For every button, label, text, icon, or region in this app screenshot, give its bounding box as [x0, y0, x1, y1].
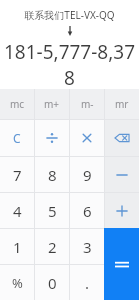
staticText: 6: [83, 201, 92, 221]
button[interactable]: mr: [105, 89, 139, 119]
button[interactable]: %: [0, 265, 34, 300]
button[interactable]: Multiply: [70, 120, 104, 156]
button[interactable]: C: [0, 120, 34, 156]
staticText: 4: [13, 201, 22, 221]
staticText: mr: [115, 97, 129, 111]
staticText: .: [85, 273, 90, 293]
button[interactable]: Minus: [105, 157, 139, 192]
staticText: 联系我们TEL-VX-QQ: [24, 8, 115, 22]
button[interactable]: 6: [70, 193, 104, 228]
staticText: %: [12, 274, 23, 292]
button[interactable]: 2: [35, 229, 69, 264]
staticText: 7: [13, 165, 22, 185]
button[interactable]: 7: [0, 157, 34, 192]
button[interactable]: Backspace: [105, 120, 139, 156]
button[interactable]: 3: [70, 229, 104, 264]
staticText: 0: [48, 273, 57, 293]
button[interactable]: m+: [35, 89, 69, 119]
staticText: 3: [83, 237, 92, 257]
staticText: 5: [48, 201, 57, 221]
staticText: mc: [10, 97, 25, 111]
button[interactable]: 8: [35, 157, 69, 192]
button[interactable]: 1: [0, 229, 34, 264]
staticText: 8: [48, 165, 57, 185]
staticText: m-: [81, 97, 94, 111]
staticText: 2: [48, 237, 57, 257]
button[interactable]: m-: [70, 89, 104, 119]
button[interactable]: 5: [35, 193, 69, 228]
button[interactable]: Plus: [105, 193, 139, 228]
button[interactable]: .: [70, 265, 104, 300]
staticText: 1: [13, 237, 22, 257]
button[interactable]: Divide: [35, 120, 69, 156]
button[interactable]: mc: [0, 89, 34, 119]
staticText: 9: [83, 165, 92, 185]
button[interactable]: 4: [0, 193, 34, 228]
button[interactable]: 0: [35, 265, 69, 300]
staticText: C: [13, 130, 21, 146]
staticText: m+: [44, 97, 60, 111]
button[interactable]: Equals: [104, 228, 139, 300]
button[interactable]: 9: [70, 157, 104, 192]
staticText: 181-5,777-8,378: [0, 39, 139, 89]
